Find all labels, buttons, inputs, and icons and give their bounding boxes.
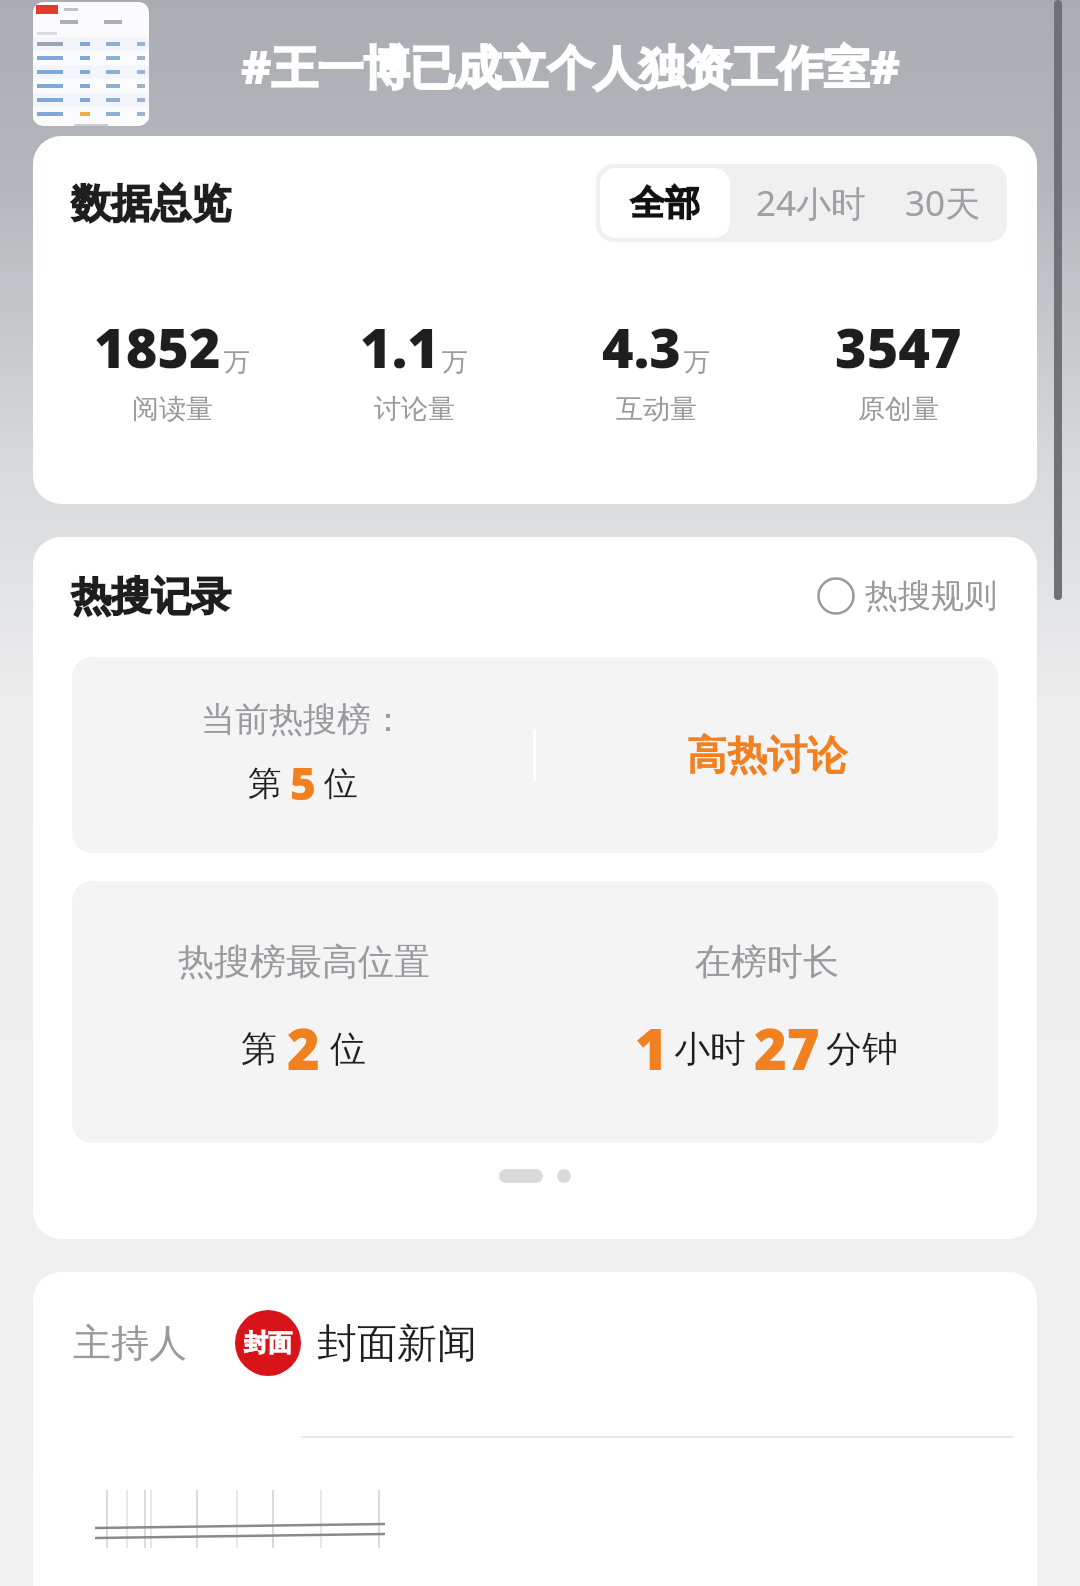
staticText: 位 <box>330 1026 366 1071</box>
button[interactable]: 热搜榜最高位置 <box>72 881 998 1143</box>
staticText: 原创量 <box>858 392 939 426</box>
staticText: 数据总览 <box>71 178 231 228</box>
staticText: 万 <box>442 346 468 379</box>
staticText: 互动量 <box>616 392 697 426</box>
button[interactable]: 主持人 <box>73 1310 1037 1376</box>
staticText: 万 <box>224 346 250 379</box>
staticText: 热搜榜最高位置 <box>178 939 430 984</box>
button[interactable]: 30天 <box>889 164 1007 242</box>
staticText: 封面新闻 <box>317 1318 477 1368</box>
staticText: 24小时 <box>756 179 867 227</box>
staticText: 热搜记录 <box>71 571 231 621</box>
staticText: 热搜规则 <box>865 575 997 617</box>
staticText: 1852 <box>94 310 221 384</box>
staticText: 万 <box>684 346 710 379</box>
staticText: 当前热搜榜： <box>201 698 405 741</box>
staticText: 4.3 <box>602 310 681 384</box>
other: 热搜规则说明 <box>817 577 855 615</box>
button[interactable]: 24小时 <box>734 164 889 242</box>
staticText: 第 <box>248 762 282 805</box>
staticText: 3547 <box>835 310 962 384</box>
staticText: 小时 <box>674 1026 746 1071</box>
staticText: 阅读量 <box>132 392 213 426</box>
staticText: 2 <box>287 1010 320 1086</box>
button[interactable]: 当前热搜榜： <box>72 657 998 853</box>
staticText: 讨论量 <box>374 392 455 426</box>
staticText: 位 <box>324 762 358 805</box>
staticText: 高热讨论 <box>687 730 847 780</box>
staticText: 5 <box>290 753 316 813</box>
staticText: 30天 <box>905 179 981 227</box>
staticText: 1.1 <box>360 310 439 384</box>
staticText: 主持人 <box>73 1319 187 1367</box>
staticText: 第 <box>241 1026 277 1071</box>
button[interactable]: 全部 <box>600 168 730 238</box>
staticText: 1 <box>635 1010 668 1086</box>
staticText: 封面 <box>244 1328 292 1358</box>
staticText: 在榜时长 <box>695 939 839 984</box>
staticText: 分钟 <box>826 1026 898 1071</box>
staticText: 27 <box>754 1010 820 1086</box>
button[interactable]: 热搜规则说明 <box>811 569 1003 623</box>
staticText: 全部 <box>630 181 700 225</box>
staticText: #王一博已成立个人独资工作室# <box>241 35 900 98</box>
